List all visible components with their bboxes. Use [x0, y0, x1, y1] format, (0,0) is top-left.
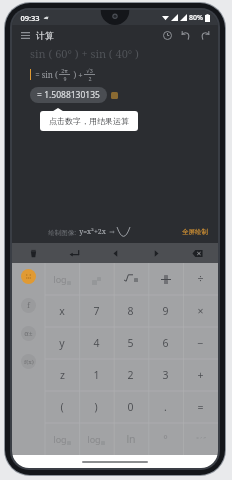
- button[interactable]: ln: [113, 423, 148, 455]
- staticText: 5: [127, 336, 134, 350]
- staticText: (: [60, 400, 64, 414]
- staticText: 09:33: [20, 13, 40, 23]
- staticText: ° ′ ″: [196, 435, 206, 443]
- staticText: ): [94, 400, 98, 414]
- button[interactable]: back: [177, 243, 218, 263]
- button[interactable]: Menu: [18, 28, 32, 42]
- staticText: 80%: [189, 13, 203, 23]
- button[interactable]: Copy result: [111, 92, 118, 99]
- button[interactable]: 7: [79, 295, 113, 327]
- button[interactable]: = 1.5088130135: [30, 87, 107, 103]
- button[interactable]: History: [160, 28, 175, 43]
- button[interactable]: 4: [79, 327, 113, 359]
- staticText: .: [164, 400, 167, 414]
- button[interactable]: left: [95, 243, 136, 263]
- staticText: x: [59, 304, 65, 318]
- staticText: log: [53, 273, 67, 285]
- button[interactable]: +: [183, 359, 218, 391]
- staticText: 8: [127, 304, 134, 318]
- button[interactable]: Undo: [178, 28, 193, 43]
- staticText: 9: [63, 75, 67, 82]
- staticText: 0: [127, 400, 134, 414]
- staticText: f: [27, 301, 30, 311]
- button[interactable]: −: [183, 327, 218, 359]
- button[interactable]: 点击数字，用结果运算: [40, 111, 138, 131]
- staticText: z: [60, 368, 65, 382]
- staticText: 3: [162, 368, 169, 382]
- staticText: 绘制图像:: [48, 228, 76, 237]
- staticText: −: [197, 336, 204, 350]
- staticText: = sin (: [34, 69, 59, 80]
- staticText: √3: [86, 67, 93, 74]
- button[interactable]: f(x): [21, 354, 36, 369]
- button[interactable]: f: [21, 298, 36, 313]
- staticText: sin ( 60° ) + sin ( 40° ): [30, 46, 139, 61]
- staticText: ) +: [70, 69, 84, 80]
- button[interactable]: Redo: [197, 28, 212, 43]
- button[interactable]: log: [79, 423, 113, 455]
- button[interactable]: x: [45, 295, 79, 327]
- button[interactable]: trash: [12, 243, 54, 263]
- button[interactable]: 0: [113, 391, 148, 423]
- button[interactable]: right: [136, 243, 177, 263]
- button[interactable]: y: [45, 327, 79, 359]
- button[interactable]: enter: [54, 243, 95, 263]
- staticText: log: [87, 433, 101, 445]
- button[interactable]: 6: [148, 327, 183, 359]
- staticText: =: [197, 400, 204, 414]
- staticText: 计算: [36, 30, 54, 41]
- staticText: ×: [197, 304, 204, 318]
- staticText: 1: [93, 368, 100, 382]
- staticText: = 1.5088130135: [37, 89, 100, 101]
- staticText: α±: [24, 329, 33, 339]
- button[interactable]: 3: [148, 359, 183, 391]
- staticText: log: [53, 433, 67, 445]
- button[interactable]: Keyboard: [21, 269, 36, 284]
- staticText: y: [59, 336, 65, 350]
- staticText: 2π: [61, 67, 68, 74]
- staticText: 6: [162, 336, 169, 350]
- staticText: 4: [93, 336, 100, 350]
- staticText: 2: [88, 75, 92, 82]
- button[interactable]: ÷: [183, 263, 218, 295]
- staticText: ⇒: [109, 228, 115, 236]
- staticText: 9: [162, 304, 169, 318]
- staticText: f(x): [24, 358, 34, 366]
- button[interactable]: =: [183, 391, 218, 423]
- button[interactable]: log: [45, 423, 79, 455]
- button[interactable]: [148, 263, 183, 295]
- button[interactable]: 2: [113, 359, 148, 391]
- staticText: 点击数字，用结果运算: [49, 116, 129, 126]
- staticText: +: [197, 368, 204, 382]
- button[interactable]: z: [45, 359, 79, 391]
- button[interactable]: 1: [79, 359, 113, 391]
- button[interactable]: 5: [113, 327, 148, 359]
- staticText: 7: [93, 304, 100, 318]
- button[interactable]: α±: [21, 326, 36, 341]
- button[interactable]: 9: [148, 295, 183, 327]
- button[interactable]: ×: [183, 295, 218, 327]
- button[interactable]: (: [45, 391, 79, 423]
- staticText: 2: [127, 368, 134, 382]
- button[interactable]: [113, 263, 148, 295]
- staticText: y=x²+2x: [79, 227, 106, 237]
- staticText: ÷: [197, 272, 204, 286]
- staticText: °: [163, 432, 168, 446]
- button[interactable]: log: [45, 263, 79, 295]
- staticText: 全屏绘制: [182, 228, 208, 236]
- button[interactable]: 8: [113, 295, 148, 327]
- staticText: ln: [126, 432, 136, 446]
- button[interactable]: ): [79, 391, 113, 423]
- button[interactable]: 全屏绘制: [180, 226, 210, 238]
